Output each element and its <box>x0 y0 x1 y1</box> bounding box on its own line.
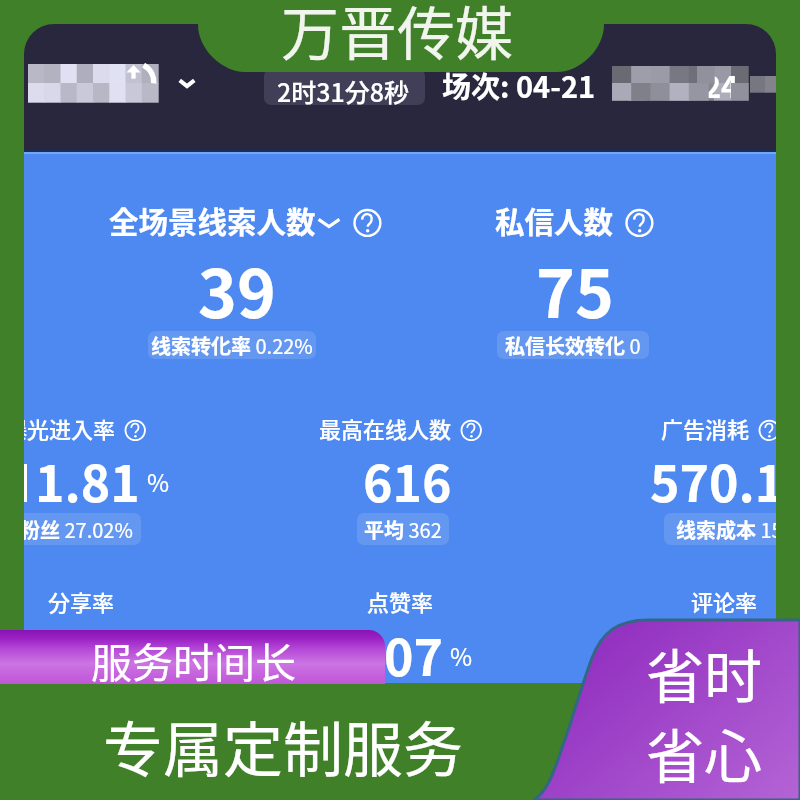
staticText: 39 <box>198 241 276 337</box>
staticText: 万晋传媒 <box>281 0 514 72</box>
button[interactable]: 线索成本 <box>664 513 776 545</box>
staticText: 1.81 <box>35 444 140 516</box>
staticText: % <box>450 638 473 673</box>
staticText: 省心 <box>646 711 763 795</box>
staticText: 私信长效转化 <box>505 331 625 359</box>
staticText: 服务时间长 <box>91 630 296 684</box>
staticText: 点赞率 <box>367 585 434 617</box>
staticText: 最高在线人数 <box>319 412 452 444</box>
staticText: 07 <box>384 618 443 690</box>
button[interactable]: 平均 <box>357 513 449 545</box>
button[interactable]: Expand account <box>174 70 200 96</box>
button[interactable]: 全场景线索人数 <box>109 199 383 242</box>
staticText: 全场景线索人数 <box>109 199 316 242</box>
button[interactable]: 粉丝 <box>24 513 141 545</box>
staticText: 75 <box>536 241 614 337</box>
staticText: 省时 <box>646 631 763 715</box>
staticText: 场次: 04-21 <box>442 64 596 106</box>
staticText: 362 <box>404 515 442 544</box>
staticText: 平均 <box>364 515 404 544</box>
staticText: 分享率 <box>48 585 115 617</box>
staticText: 广告消耗 <box>661 412 750 444</box>
staticText: 570.1 <box>650 444 776 516</box>
button[interactable]: 线索转化率 <box>148 331 316 359</box>
button[interactable]: 广告消耗 <box>661 412 776 444</box>
button[interactable]: 私信人数 <box>495 199 655 242</box>
staticText: 私信人数 <box>495 199 614 242</box>
staticText: 线索成本 <box>676 515 756 544</box>
staticText: 评论率 <box>691 585 758 617</box>
button[interactable]: 最高在线人数 <box>319 412 483 444</box>
button[interactable]: 私信长效转化 <box>497 331 649 359</box>
staticText: 2时31分8秒 <box>277 73 410 105</box>
staticText: 15 <box>756 515 776 544</box>
staticText: 24 <box>704 64 739 106</box>
staticText: 曝光进入率 <box>24 412 116 444</box>
button[interactable]: 曝光进入率 <box>24 412 147 444</box>
staticText: 线索转化率 <box>151 331 251 359</box>
staticText: 0 <box>625 331 641 359</box>
staticText: 专属定制服务 <box>103 702 463 789</box>
staticText: 616 <box>363 444 452 516</box>
button[interactable]: 2时31分8秒 <box>264 69 425 105</box>
staticText: 27.02% <box>60 515 133 544</box>
staticText: % <box>147 464 170 499</box>
staticText: 0.22% <box>251 331 313 359</box>
staticText: 粉丝 <box>24 515 60 544</box>
